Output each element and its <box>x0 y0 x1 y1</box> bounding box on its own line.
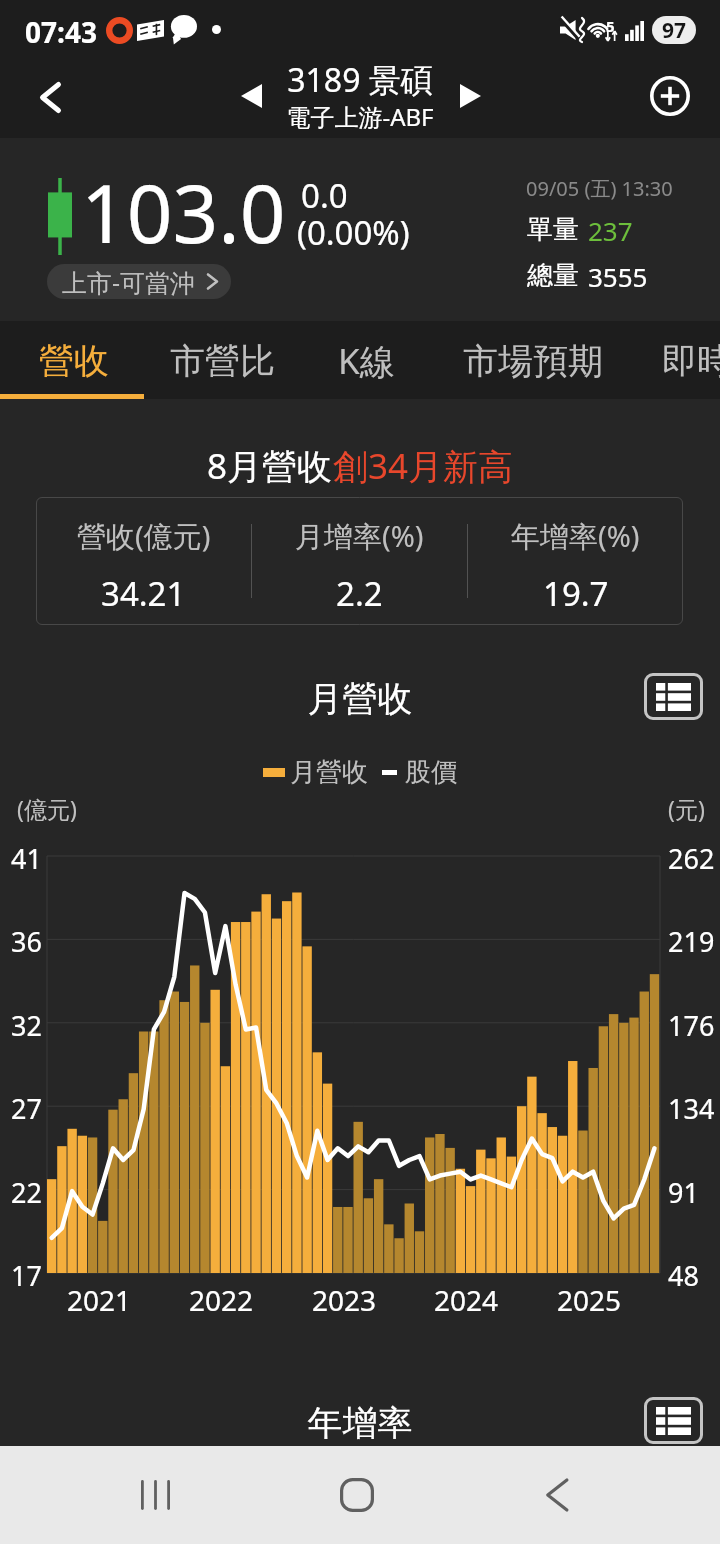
staticText: 48 <box>668 1257 699 1294</box>
staticText: 0.0 <box>301 173 348 218</box>
staticText: 219 <box>668 923 715 960</box>
staticText: 月增率(%) <box>295 516 424 556</box>
staticText: 07:43 <box>25 13 97 51</box>
button[interactable]: 市營比 <box>147 321 297 399</box>
staticText: 營收 <box>39 339 109 383</box>
staticText: (0.00%) <box>297 210 410 255</box>
button[interactable]: Back <box>18 68 82 138</box>
staticText: 2024 <box>434 1281 499 1319</box>
button[interactable]: 月增率(%) <box>252 497 467 625</box>
staticText: 91 <box>668 1174 699 1211</box>
staticText: 134 <box>668 1090 715 1127</box>
button[interactable]: Show YoY table <box>644 1397 703 1444</box>
staticText: 股價 <box>405 756 457 789</box>
staticText: 97 <box>662 16 687 44</box>
staticText: 34.21 <box>101 571 186 616</box>
staticText: 2025 <box>557 1281 622 1319</box>
staticText: 市營比 <box>170 339 275 383</box>
staticText: 3189 景碩 <box>0 58 720 102</box>
staticText: 月營收 <box>0 677 720 721</box>
staticText: 創34月新高 <box>333 442 514 490</box>
staticText: 即時 <box>662 339 720 383</box>
staticText: 市場預期 <box>463 339 603 383</box>
staticText: 2023 <box>312 1281 377 1319</box>
button[interactable]: Previous stock <box>226 68 276 138</box>
staticText: 32 <box>11 1007 42 1044</box>
button[interactable]: 年增率(%) <box>468 497 683 625</box>
staticText: 22 <box>11 1174 42 1211</box>
button[interactable]: Recent apps <box>105 1446 205 1544</box>
staticText: 27 <box>11 1090 42 1127</box>
staticText: K線 <box>338 337 395 385</box>
staticText: 單量 <box>527 213 579 246</box>
staticText: 2021 <box>67 1281 132 1319</box>
staticText: 103.0 <box>81 157 286 266</box>
staticText: (元) <box>668 793 705 824</box>
button[interactable]: Home <box>307 1446 407 1544</box>
button[interactable]: Back <box>507 1446 607 1544</box>
button[interactable]: 上市-可當沖 <box>47 264 231 299</box>
staticText: 36 <box>11 923 42 960</box>
staticText: 上市-可當沖 <box>62 265 196 299</box>
staticText: 19.7 <box>543 571 609 616</box>
button[interactable]: 市場預期 <box>435 321 630 399</box>
staticText: 月營收 <box>290 756 368 789</box>
staticText: (億元) <box>17 793 77 824</box>
button[interactable]: Add to watchlist <box>640 68 700 138</box>
button[interactable]: 營收 <box>0 321 147 399</box>
button[interactable]: K線 <box>297 321 435 399</box>
staticText: 17 <box>11 1257 42 1294</box>
staticText: 5 <box>606 16 615 36</box>
button[interactable]: Show monthly revenue table <box>644 673 703 720</box>
staticText: 總量 <box>527 259 579 292</box>
staticText: 262 <box>668 840 715 877</box>
staticText: 年增率 <box>0 1401 720 1445</box>
staticText: 電子上游-ABF <box>0 100 720 133</box>
staticText: 2022 <box>189 1281 254 1319</box>
staticText: 41 <box>11 840 42 877</box>
staticText: 年增率(%) <box>511 516 640 556</box>
staticText: 09/05 (五) 13:30 <box>526 175 673 202</box>
button[interactable]: Next stock <box>445 68 495 138</box>
staticText: 3555 <box>588 259 648 294</box>
button[interactable]: 營收(億元) <box>36 497 251 625</box>
staticText: 176 <box>668 1007 715 1044</box>
staticText: 8月營收 <box>207 442 333 490</box>
staticText: 237 <box>588 213 633 248</box>
button[interactable]: 即時 <box>630 321 720 399</box>
staticText: 營收(億元) <box>77 516 211 556</box>
staticText: 2.2 <box>336 571 383 616</box>
